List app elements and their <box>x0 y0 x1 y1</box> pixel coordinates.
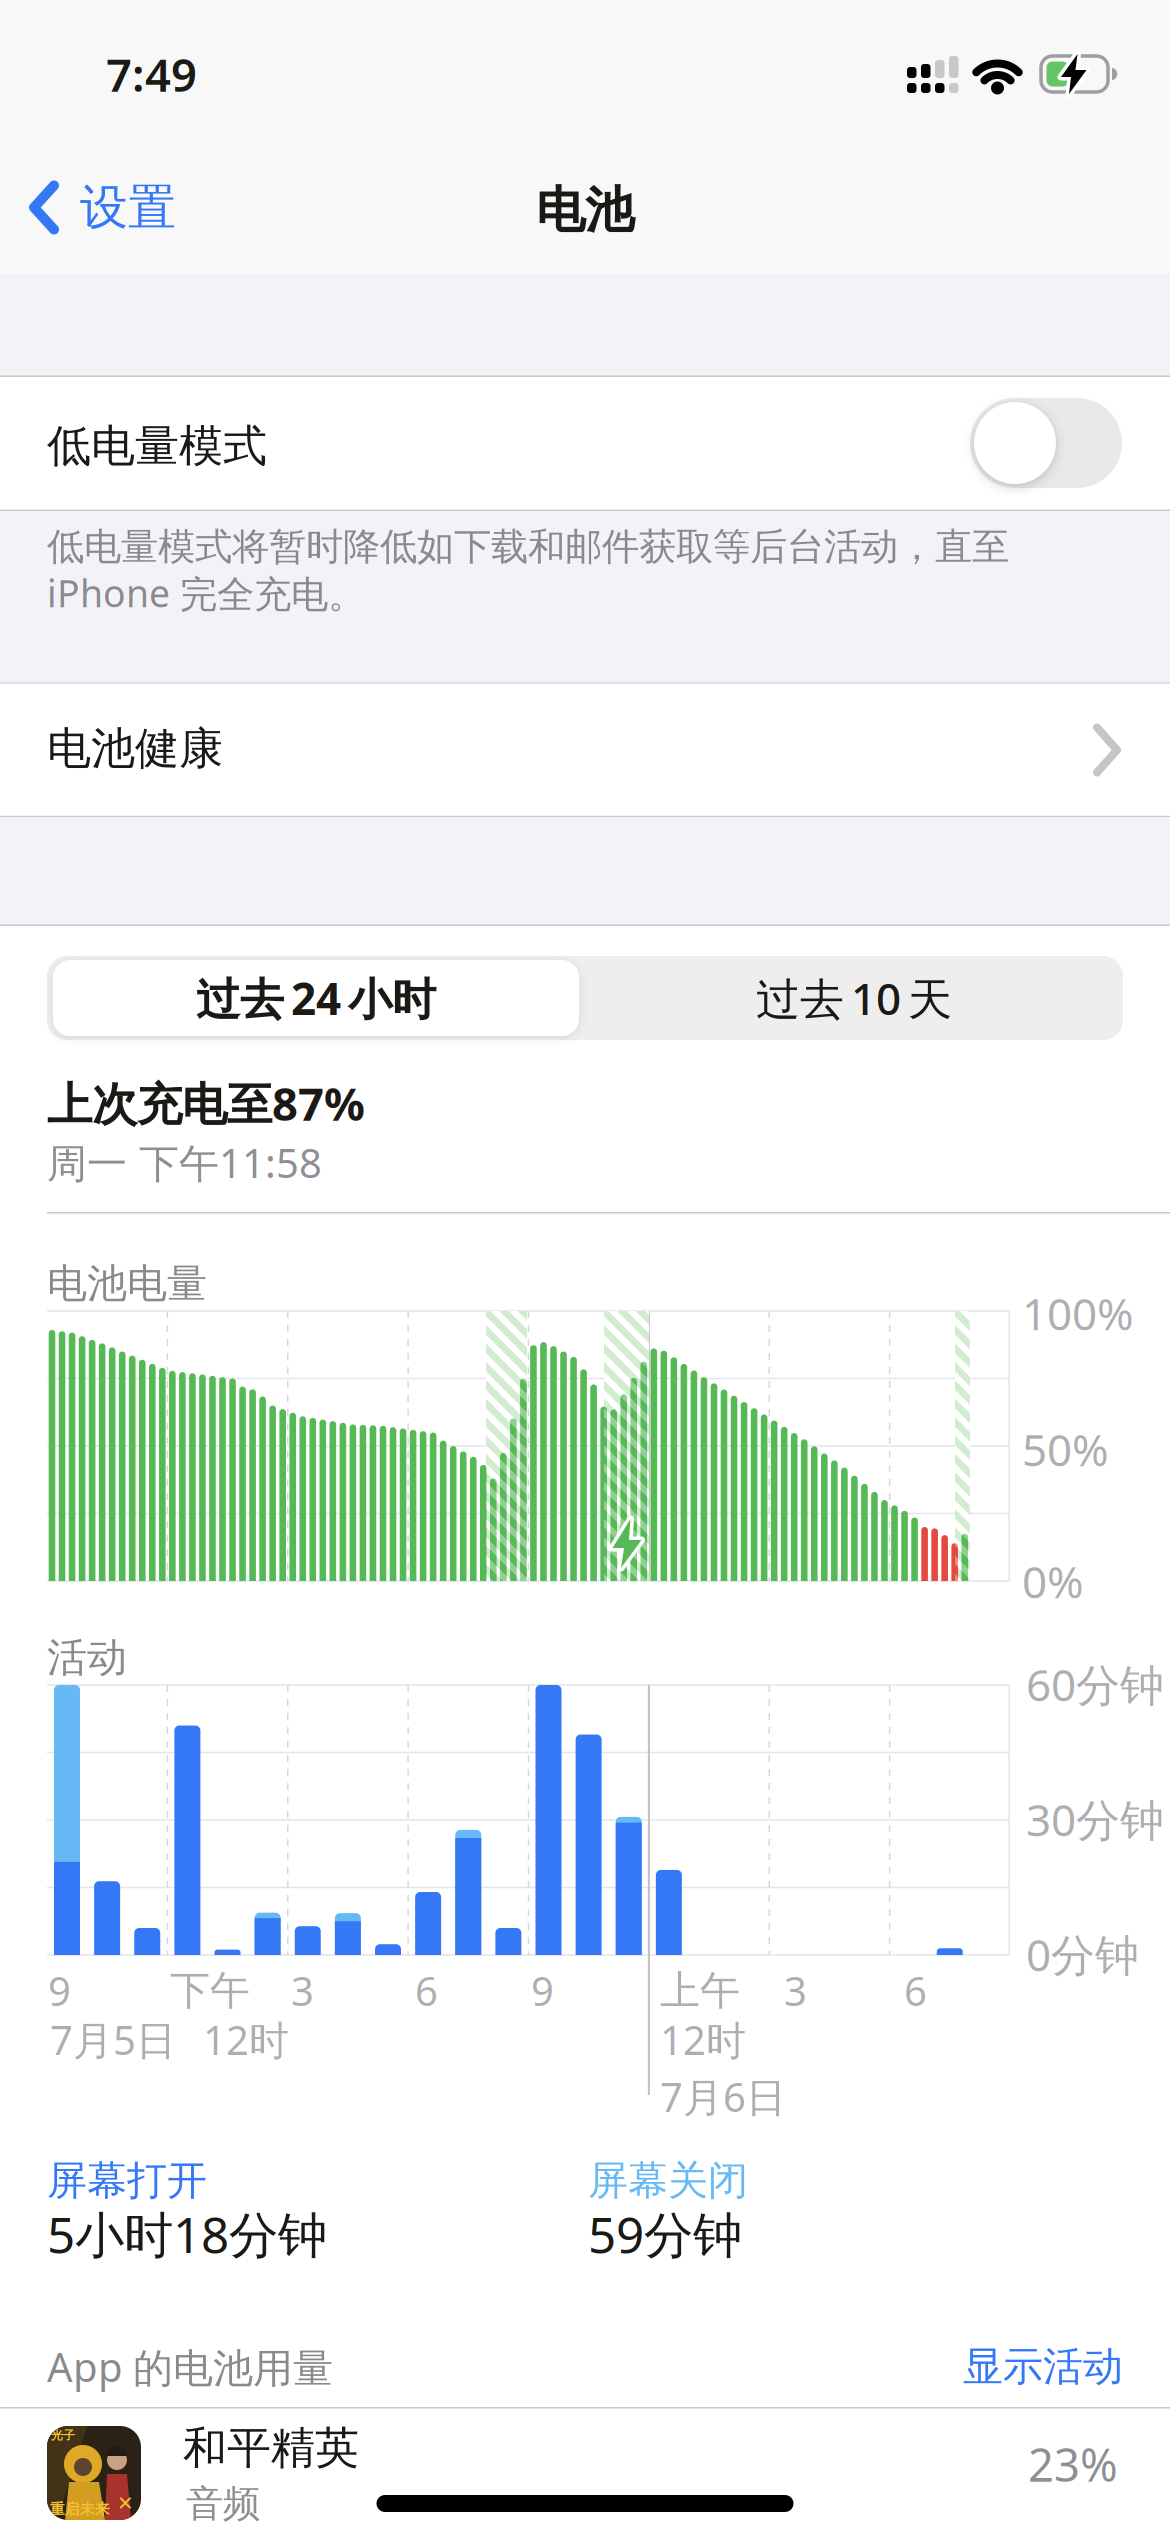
staticText: App 的电池用量 <box>47 2340 333 2393</box>
staticText: 6 <box>415 1964 438 2017</box>
staticText: iPhone 完全充电。 <box>47 568 365 618</box>
staticText: 上午 <box>660 1966 740 2015</box>
staticText: 电池 <box>536 180 634 241</box>
staticText: 59分钟 <box>588 2201 742 2266</box>
staticText: 9 <box>48 1964 71 2017</box>
staticText: 7:49 <box>106 44 197 104</box>
button[interactable]: 过去 10 天 <box>585 956 1123 1040</box>
staticText: 7月5日 <box>50 2013 176 2066</box>
staticText: 重启未来 <box>50 2500 110 2518</box>
staticText: 和平精英 <box>183 2421 359 2475</box>
staticText: 3 <box>784 1964 807 2017</box>
staticText: 9 <box>531 1964 554 2017</box>
staticText: ✕ <box>117 2492 134 2515</box>
staticText: 活动 <box>47 1633 127 1682</box>
staticText: 光子 <box>51 2428 75 2443</box>
staticText: 设置 <box>80 178 176 237</box>
staticText: 过去 24 小时 <box>196 969 436 1027</box>
staticText: 23% <box>1028 2434 1118 2494</box>
button[interactable]: 显示活动 <box>963 2342 1123 2391</box>
staticText: 30分钟 <box>1026 1790 1164 1848</box>
staticText: 6 <box>904 1964 927 2017</box>
staticText: 音频 <box>186 2481 260 2527</box>
staticText: 过去 10 天 <box>756 969 952 1027</box>
staticText: 显示活动 <box>963 2342 1123 2391</box>
staticText: 12时 <box>660 2013 746 2066</box>
staticText: 50% <box>1022 1420 1109 1478</box>
staticText: 下午 <box>170 1966 250 2015</box>
staticText: 屏幕打开 <box>47 2156 207 2205</box>
staticText: 5小时18分钟 <box>47 2201 327 2266</box>
staticText: 电池电量 <box>47 1259 207 1308</box>
staticText: 周一 下午11:58 <box>47 1136 322 1189</box>
staticText: 12时 <box>203 2013 289 2066</box>
button[interactable]: 低电量模式 <box>970 398 1122 488</box>
staticText: 0分钟 <box>1026 1925 1139 1983</box>
staticText: 低电量模式 <box>47 419 267 473</box>
staticText: 7月6日 <box>660 2070 786 2123</box>
staticText: 屏幕关闭 <box>588 2156 748 2205</box>
staticText: 3 <box>291 1964 314 2017</box>
button[interactable]: 电池健康 <box>0 683 1170 815</box>
staticText: 60分钟 <box>1026 1655 1164 1713</box>
button[interactable]: 光子 <box>0 2408 1170 2532</box>
staticText: 上次充电至87% <box>47 1073 365 1133</box>
button[interactable]: 过去 24 小时 <box>51 956 581 1040</box>
staticText: 低电量模式将暂时降低如下载和邮件获取等后台活动，直至 <box>47 524 1009 570</box>
button[interactable]: 返回设置 <box>28 178 176 237</box>
staticText: 0% <box>1022 1552 1084 1610</box>
staticText: 电池健康 <box>47 721 223 775</box>
staticText: 100% <box>1022 1284 1134 1342</box>
